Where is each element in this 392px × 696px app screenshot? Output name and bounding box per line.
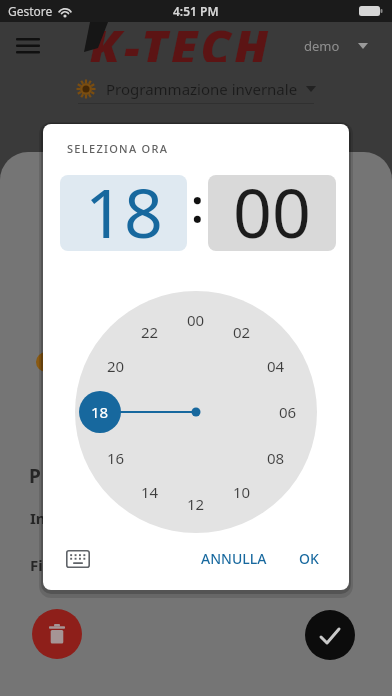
staticText: demo [304,37,340,55]
button[interactable]: 18 [60,175,187,251]
button[interactable] [32,609,82,659]
staticText: P [29,463,41,489]
button[interactable]: ANNULLA [193,544,275,572]
button[interactable] [65,549,91,569]
button[interactable] [12,30,44,62]
staticText: In [30,508,46,528]
staticText: 02 [233,322,251,342]
staticText: 10 [233,482,251,502]
staticText: Fi [30,555,43,575]
staticText: Gestore [8,3,53,19]
button[interactable]: 00 [208,175,336,251]
staticText: SELEZIONA ORA [67,141,169,156]
staticText: 04 [267,356,285,376]
staticText: OK [299,549,319,568]
staticText: 16 [107,448,125,468]
button[interactable] [305,610,355,660]
staticText: 00 [187,310,205,330]
button[interactable]: Programmazione invernale [76,79,316,99]
staticText: 14 [141,482,159,502]
button[interactable]: OK [291,544,327,572]
staticText: 08 [267,448,285,468]
staticText: 18 [91,402,109,422]
staticText: 20 [107,356,125,376]
staticText: ANNULLA [201,549,267,568]
staticText: 18 [85,175,163,241]
staticText: 12 [187,494,205,514]
staticText: 00 [233,175,311,241]
staticText: 06 [279,402,297,422]
button[interactable]: demo [304,37,368,55]
staticText: 22 [141,322,159,342]
staticText: 4:51 PM [173,3,219,19]
staticText: Programmazione invernale [106,79,298,99]
staticText: : [191,174,204,237]
staticText: K-TECH [89,14,271,62]
